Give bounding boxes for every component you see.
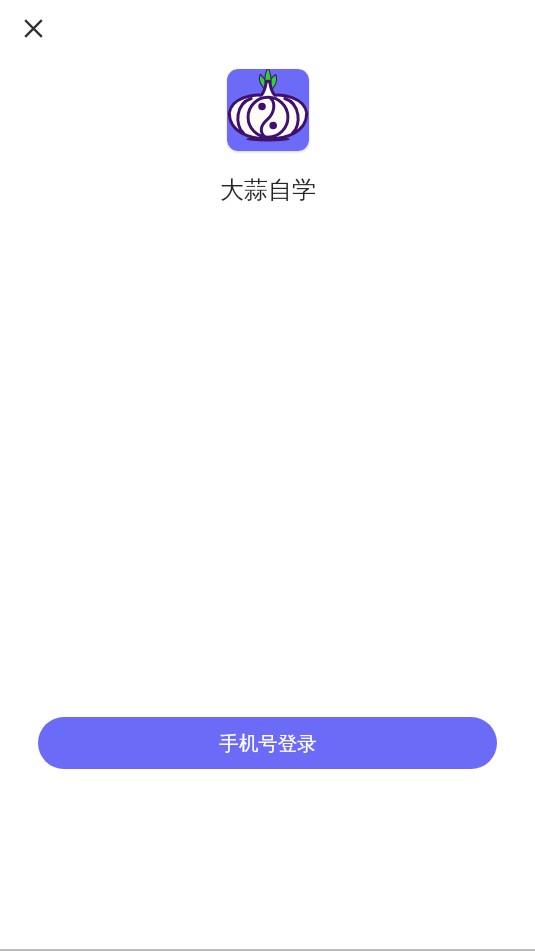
staticText: 大蒜自学 (220, 175, 316, 205)
button[interactable]: 手机号登录 (38, 717, 497, 769)
button[interactable]: Close (12, 7, 54, 50)
staticText: 手机号登录 (219, 731, 317, 756)
